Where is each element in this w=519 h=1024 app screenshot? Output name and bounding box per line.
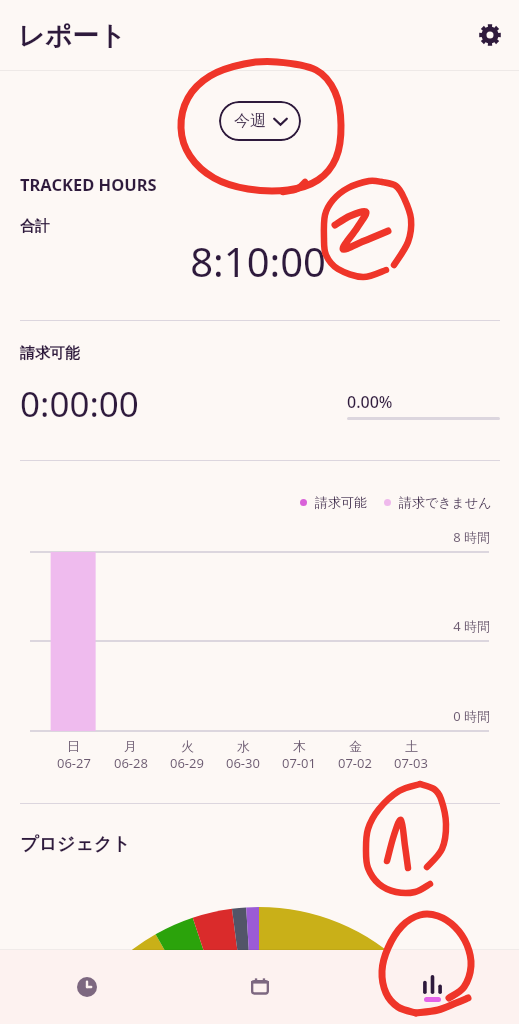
staticText: 07-03	[394, 754, 428, 772]
staticText: 06-27	[57, 754, 91, 772]
staticText: 請求可能	[20, 344, 80, 363]
staticText: 06-28	[114, 754, 148, 772]
staticText: 土	[405, 738, 418, 754]
staticText: 水	[237, 738, 250, 754]
button[interactable]: 今週	[219, 101, 301, 141]
staticText: 金	[349, 738, 362, 754]
staticText: 07-01	[282, 754, 316, 772]
staticText: レポート	[18, 19, 126, 52]
staticText: 07-02	[338, 754, 372, 772]
staticText: 日	[67, 738, 80, 754]
button[interactable]: Settings	[472, 17, 508, 53]
button[interactable]: Reports	[346, 950, 519, 1024]
staticText: 0.00%	[347, 391, 393, 413]
staticText: 4 時間	[0, 617, 490, 635]
staticText: 0 時間	[0, 707, 490, 725]
staticText: 月	[124, 738, 137, 754]
staticText: 木	[293, 738, 306, 754]
staticText: 請求可能	[315, 494, 367, 510]
staticText: 8:10:00	[0, 234, 326, 288]
staticText: 今週	[234, 111, 266, 131]
staticText: TRACKED HOURS	[20, 173, 157, 195]
staticText: 合計	[20, 217, 50, 236]
button[interactable]: Calendar	[173, 950, 346, 1024]
staticText: 06-29	[170, 754, 204, 772]
staticText: 8 時間	[0, 528, 490, 546]
staticText: 06-30	[226, 754, 260, 772]
staticText: 火	[181, 738, 194, 754]
staticText: 0:00:00	[20, 380, 139, 428]
button[interactable]: Timer	[0, 950, 173, 1024]
staticText: プロジェクト	[20, 833, 131, 856]
staticText: 請求できません	[399, 494, 492, 510]
